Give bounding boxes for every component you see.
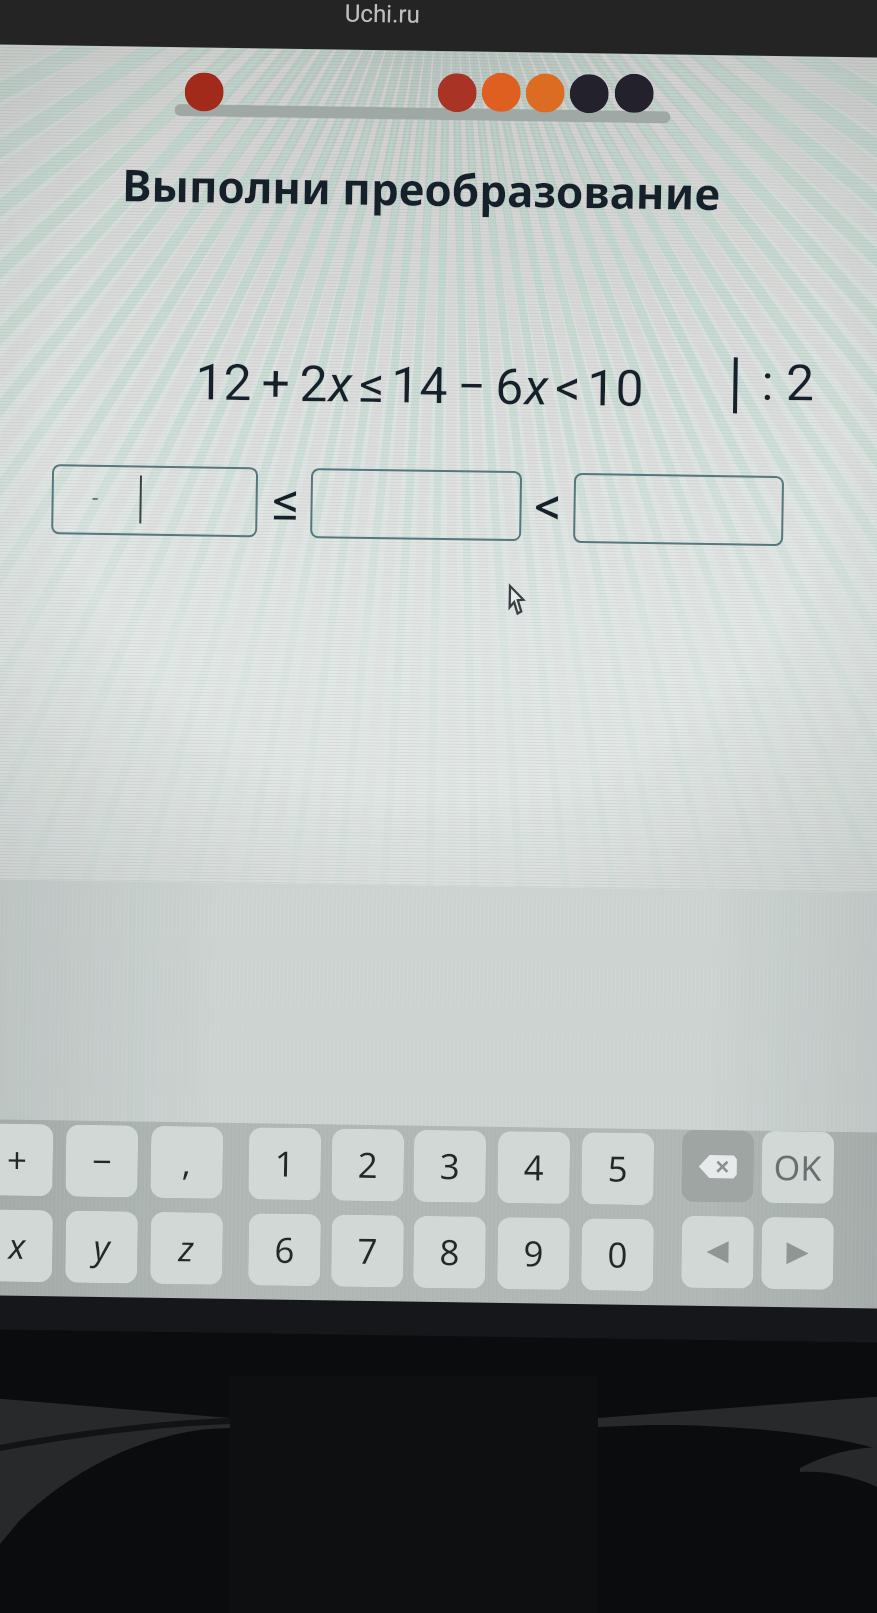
button[interactable]: 4 bbox=[497, 1131, 570, 1204]
staticText: 1 bbox=[274, 1140, 296, 1188]
staticText: + bbox=[261, 354, 291, 414]
staticText: y bbox=[93, 1223, 111, 1271]
staticText: 6 bbox=[495, 358, 525, 417]
staticText: - bbox=[91, 481, 100, 511]
staticText: 2 bbox=[299, 355, 329, 414]
staticText: 10 bbox=[587, 359, 645, 419]
button[interactable]: - bbox=[51, 464, 258, 537]
button[interactable]: 3 bbox=[413, 1130, 486, 1203]
staticText: , bbox=[181, 1138, 192, 1186]
button[interactable]: 0 bbox=[581, 1218, 654, 1291]
staticText: 8 bbox=[439, 1228, 461, 1276]
staticText: < bbox=[534, 474, 563, 538]
staticText: 7 bbox=[357, 1227, 379, 1275]
button[interactable]: x bbox=[0, 1209, 53, 1282]
button[interactable]: 6 bbox=[248, 1213, 321, 1286]
staticText: x bbox=[328, 355, 354, 415]
staticText: 0 bbox=[607, 1231, 629, 1279]
button[interactable]: + bbox=[0, 1123, 53, 1196]
staticText: 6 bbox=[274, 1226, 296, 1274]
button[interactable]: 9 bbox=[497, 1217, 570, 1290]
staticText: Выполни преобразование bbox=[122, 154, 721, 223]
button[interactable] bbox=[310, 468, 522, 541]
staticText: 5 bbox=[607, 1145, 629, 1193]
staticText: ≤ bbox=[272, 469, 301, 533]
button[interactable]: 8 bbox=[413, 1216, 486, 1289]
staticText: OK bbox=[773, 1144, 822, 1191]
staticText: 12 bbox=[195, 353, 253, 413]
button[interactable]: 1 bbox=[248, 1127, 321, 1200]
button[interactable]: − bbox=[65, 1124, 138, 1198]
staticText: 2 bbox=[357, 1141, 379, 1189]
staticText: x bbox=[8, 1222, 26, 1270]
button[interactable]: Move left bbox=[681, 1216, 754, 1289]
staticText: − bbox=[91, 1137, 113, 1185]
button[interactable]: , bbox=[150, 1126, 223, 1199]
staticText: ≤ bbox=[359, 356, 386, 415]
button[interactable]: Backspace bbox=[681, 1130, 754, 1203]
staticText: − bbox=[457, 357, 487, 417]
button[interactable]: y bbox=[65, 1210, 138, 1284]
staticText: z bbox=[178, 1224, 195, 1272]
staticText: 4 bbox=[523, 1143, 545, 1192]
staticText: : 2 bbox=[761, 354, 815, 414]
button[interactable]: z bbox=[150, 1212, 223, 1285]
button[interactable]: 2 bbox=[331, 1128, 404, 1202]
staticText: < bbox=[555, 359, 582, 418]
staticText: 9 bbox=[523, 1229, 545, 1278]
button[interactable]: OK bbox=[761, 1131, 834, 1204]
staticText: 3 bbox=[439, 1142, 461, 1190]
button[interactable]: 5 bbox=[581, 1132, 654, 1205]
button[interactable]: 7 bbox=[331, 1214, 404, 1288]
button[interactable]: Move right bbox=[761, 1217, 834, 1290]
staticText: 14 bbox=[391, 356, 449, 416]
staticText: x bbox=[524, 358, 550, 418]
staticText: + bbox=[6, 1136, 28, 1184]
button[interactable] bbox=[573, 473, 784, 546]
staticText: Uchi.ru bbox=[345, 0, 420, 29]
